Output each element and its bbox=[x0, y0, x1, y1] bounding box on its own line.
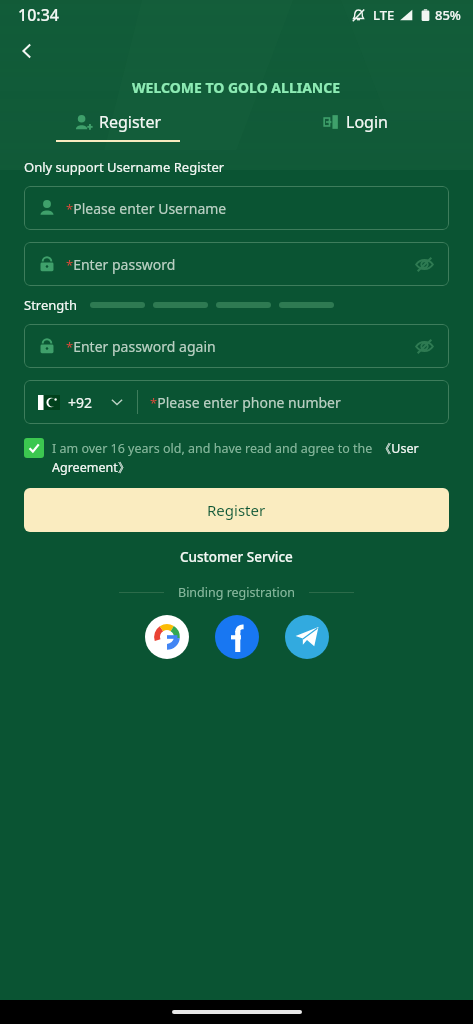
staticText: Only support Username Register bbox=[24, 158, 225, 176]
button[interactable]: Sign in with Google bbox=[145, 615, 189, 659]
staticText: Login bbox=[346, 111, 388, 133]
button[interactable]: Sign in with Telegram bbox=[285, 615, 329, 659]
button[interactable]: Customer Service bbox=[176, 544, 297, 570]
staticText: Register bbox=[99, 111, 162, 133]
button[interactable]: Sign in with Facebook bbox=[215, 615, 259, 659]
staticText: *Please enter phone number bbox=[150, 393, 341, 412]
button[interactable]: *Please enter Username bbox=[24, 186, 449, 230]
staticText: 85% bbox=[435, 6, 461, 24]
button[interactable]: Back bbox=[8, 32, 46, 70]
button[interactable]: Register bbox=[24, 488, 449, 532]
button[interactable]: *Enter password again bbox=[24, 324, 449, 368]
staticText: +92 bbox=[68, 393, 93, 412]
staticText: *Please enter Username bbox=[66, 199, 227, 218]
button[interactable]: I am over 16 years old, and have read an… bbox=[24, 438, 449, 476]
staticText: Register bbox=[207, 500, 266, 520]
staticText: 10:34 bbox=[18, 4, 59, 26]
staticText: Strength bbox=[24, 296, 78, 314]
staticText: *Enter password again bbox=[66, 337, 216, 356]
staticText: LTE bbox=[373, 6, 395, 24]
button[interactable]: +92 bbox=[24, 380, 449, 424]
button[interactable]: Login bbox=[236, 111, 473, 142]
button[interactable]: Register bbox=[0, 111, 236, 142]
staticText: Binding registration bbox=[178, 584, 295, 601]
staticText: Customer Service bbox=[180, 548, 293, 566]
button[interactable]: Show password bbox=[411, 251, 437, 277]
staticText: I am over 16 years old, and have read an… bbox=[52, 440, 449, 476]
staticText: *Enter password bbox=[66, 255, 176, 274]
button[interactable]: *Enter password bbox=[24, 242, 449, 286]
button[interactable]: Show password bbox=[411, 333, 437, 359]
staticText: WELCOME TO GOLO ALLIANCE bbox=[132, 78, 341, 97]
